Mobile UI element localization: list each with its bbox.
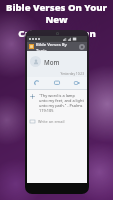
staticText: Bible Verses By Topic (36, 42, 78, 51)
staticText: Caller ID Screen (18, 27, 96, 40)
staticText: "Thy word is a lamp unto my feet, and a … (39, 93, 84, 113)
staticText: Write an email (38, 119, 65, 124)
staticText: Yesterday 10:23 (60, 72, 84, 76)
staticText: Bible Verses On Your New (0, 1, 113, 26)
button[interactable]: Video call (67, 77, 87, 89)
button[interactable]: Write an email (27, 116, 87, 127)
button[interactable]: Message (47, 77, 67, 89)
button[interactable]: Settings (78, 43, 85, 50)
staticText: Mom (44, 58, 60, 66)
button[interactable]: "Thy word is a lamp unto my feet, and a … (27, 90, 87, 116)
button[interactable]: Mom (27, 51, 87, 72)
button[interactable]: Call (27, 77, 47, 89)
